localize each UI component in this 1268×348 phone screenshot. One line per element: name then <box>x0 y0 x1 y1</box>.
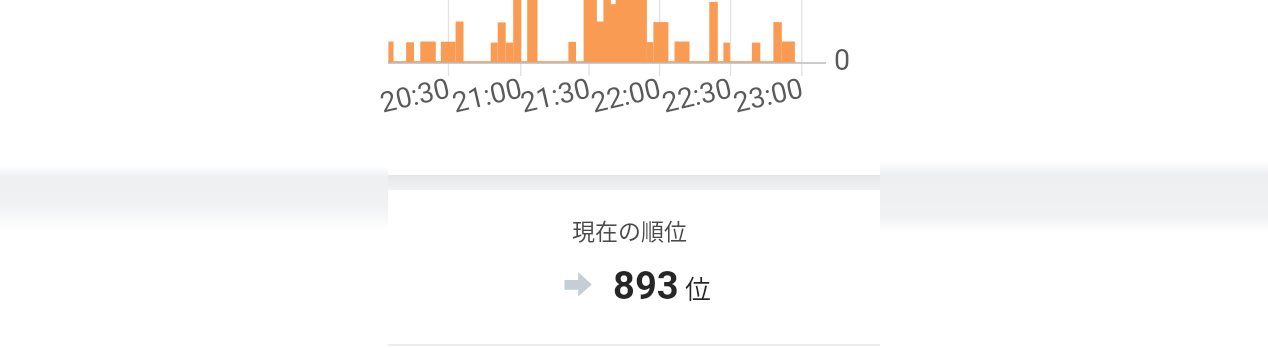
button[interactable]: 現在の順位 893 位 <box>0 0 1268 348</box>
